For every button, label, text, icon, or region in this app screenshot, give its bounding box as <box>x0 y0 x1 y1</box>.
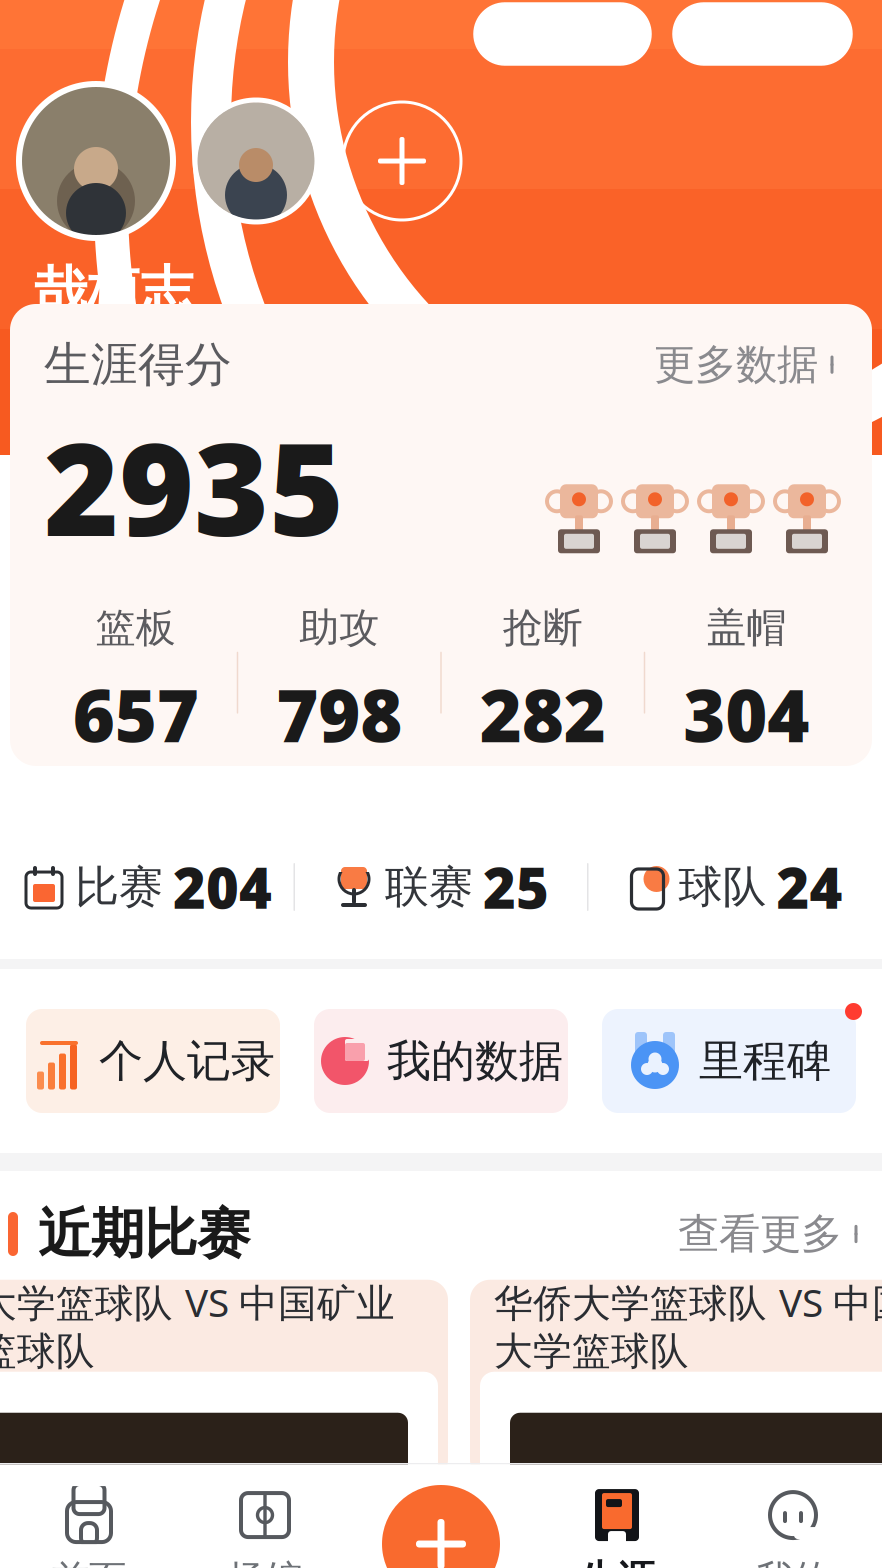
staticText: 我的 <box>756 1556 830 1568</box>
staticText: 华侨大学篮球队 VS 中国矿业大学篮球队 <box>0 1276 395 1375</box>
staticText: 657 <box>73 666 199 762</box>
staticText: 生涯 <box>580 1556 654 1568</box>
button[interactable]: 当前用户头像 <box>14 79 178 243</box>
staticText: 个人记录 <box>99 1034 275 1088</box>
button[interactable]: 个人记录 <box>20 1003 286 1119</box>
button[interactable]: 教练 <box>474 3 651 65</box>
staticText: 首页 <box>52 1556 126 1568</box>
button[interactable]: 更多数据 <box>654 339 838 390</box>
button[interactable]: 查看更多 <box>678 1209 862 1259</box>
staticText: 我的数据 <box>387 1034 563 1088</box>
staticText: 近期比赛 <box>38 1201 250 1267</box>
staticText: 更多数据 <box>654 339 818 390</box>
button[interactable]: 添加 <box>338 97 466 225</box>
button[interactable]: 华侨大学篮球队 VS 中国矿业大学篮球队 <box>470 1280 882 1480</box>
button[interactable]: 裁判 <box>673 3 852 65</box>
button[interactable]: 里程碑 <box>596 1003 862 1119</box>
staticText: 盖帽 <box>706 603 786 652</box>
button[interactable]: 新建 <box>353 1469 529 1568</box>
staticText: 24 <box>776 850 842 924</box>
staticText: 282 <box>480 666 606 762</box>
button[interactable]: 球队 <box>588 815 880 959</box>
staticText: 生涯得分 <box>44 336 232 393</box>
button[interactable]: 生涯 <box>529 1469 705 1568</box>
button[interactable]: 首页 <box>1 1469 177 1568</box>
staticText: 助攻 <box>299 603 379 652</box>
staticText: 里程碑 <box>699 1034 831 1088</box>
staticText: 抢断 <box>503 603 583 652</box>
staticText: 798 <box>276 666 402 762</box>
staticText: 204 <box>173 850 272 924</box>
staticText: 25 <box>483 850 549 924</box>
button[interactable]: 我的数据 <box>308 1003 574 1119</box>
staticText: 9:41 <box>38 0 129 1</box>
staticText: 场馆 <box>228 1556 302 1568</box>
button[interactable]: 我的 <box>705 1469 881 1568</box>
button[interactable]: 华侨大学篮球队 VS 中国矿业大学篮球队 <box>0 1280 448 1480</box>
staticText: 2935 <box>44 401 344 571</box>
staticText: 比赛 <box>75 860 163 914</box>
button[interactable]: 联赛 <box>295 815 587 959</box>
button[interactable]: 队友头像 <box>192 97 320 225</box>
staticText: 联赛 <box>385 860 473 914</box>
staticText: 球队 <box>678 860 766 914</box>
staticText: 304 <box>683 666 809 762</box>
staticText: 华侨大学篮球队 VS 中国矿业大学篮球队 <box>494 1276 882 1375</box>
button[interactable]: 场馆 <box>177 1469 353 1568</box>
staticText: 查看更多 <box>678 1209 842 1259</box>
button[interactable]: 比赛 <box>1 815 293 959</box>
staticText: 哉桓志 <box>34 259 193 324</box>
staticText: 篮板 <box>96 603 176 652</box>
